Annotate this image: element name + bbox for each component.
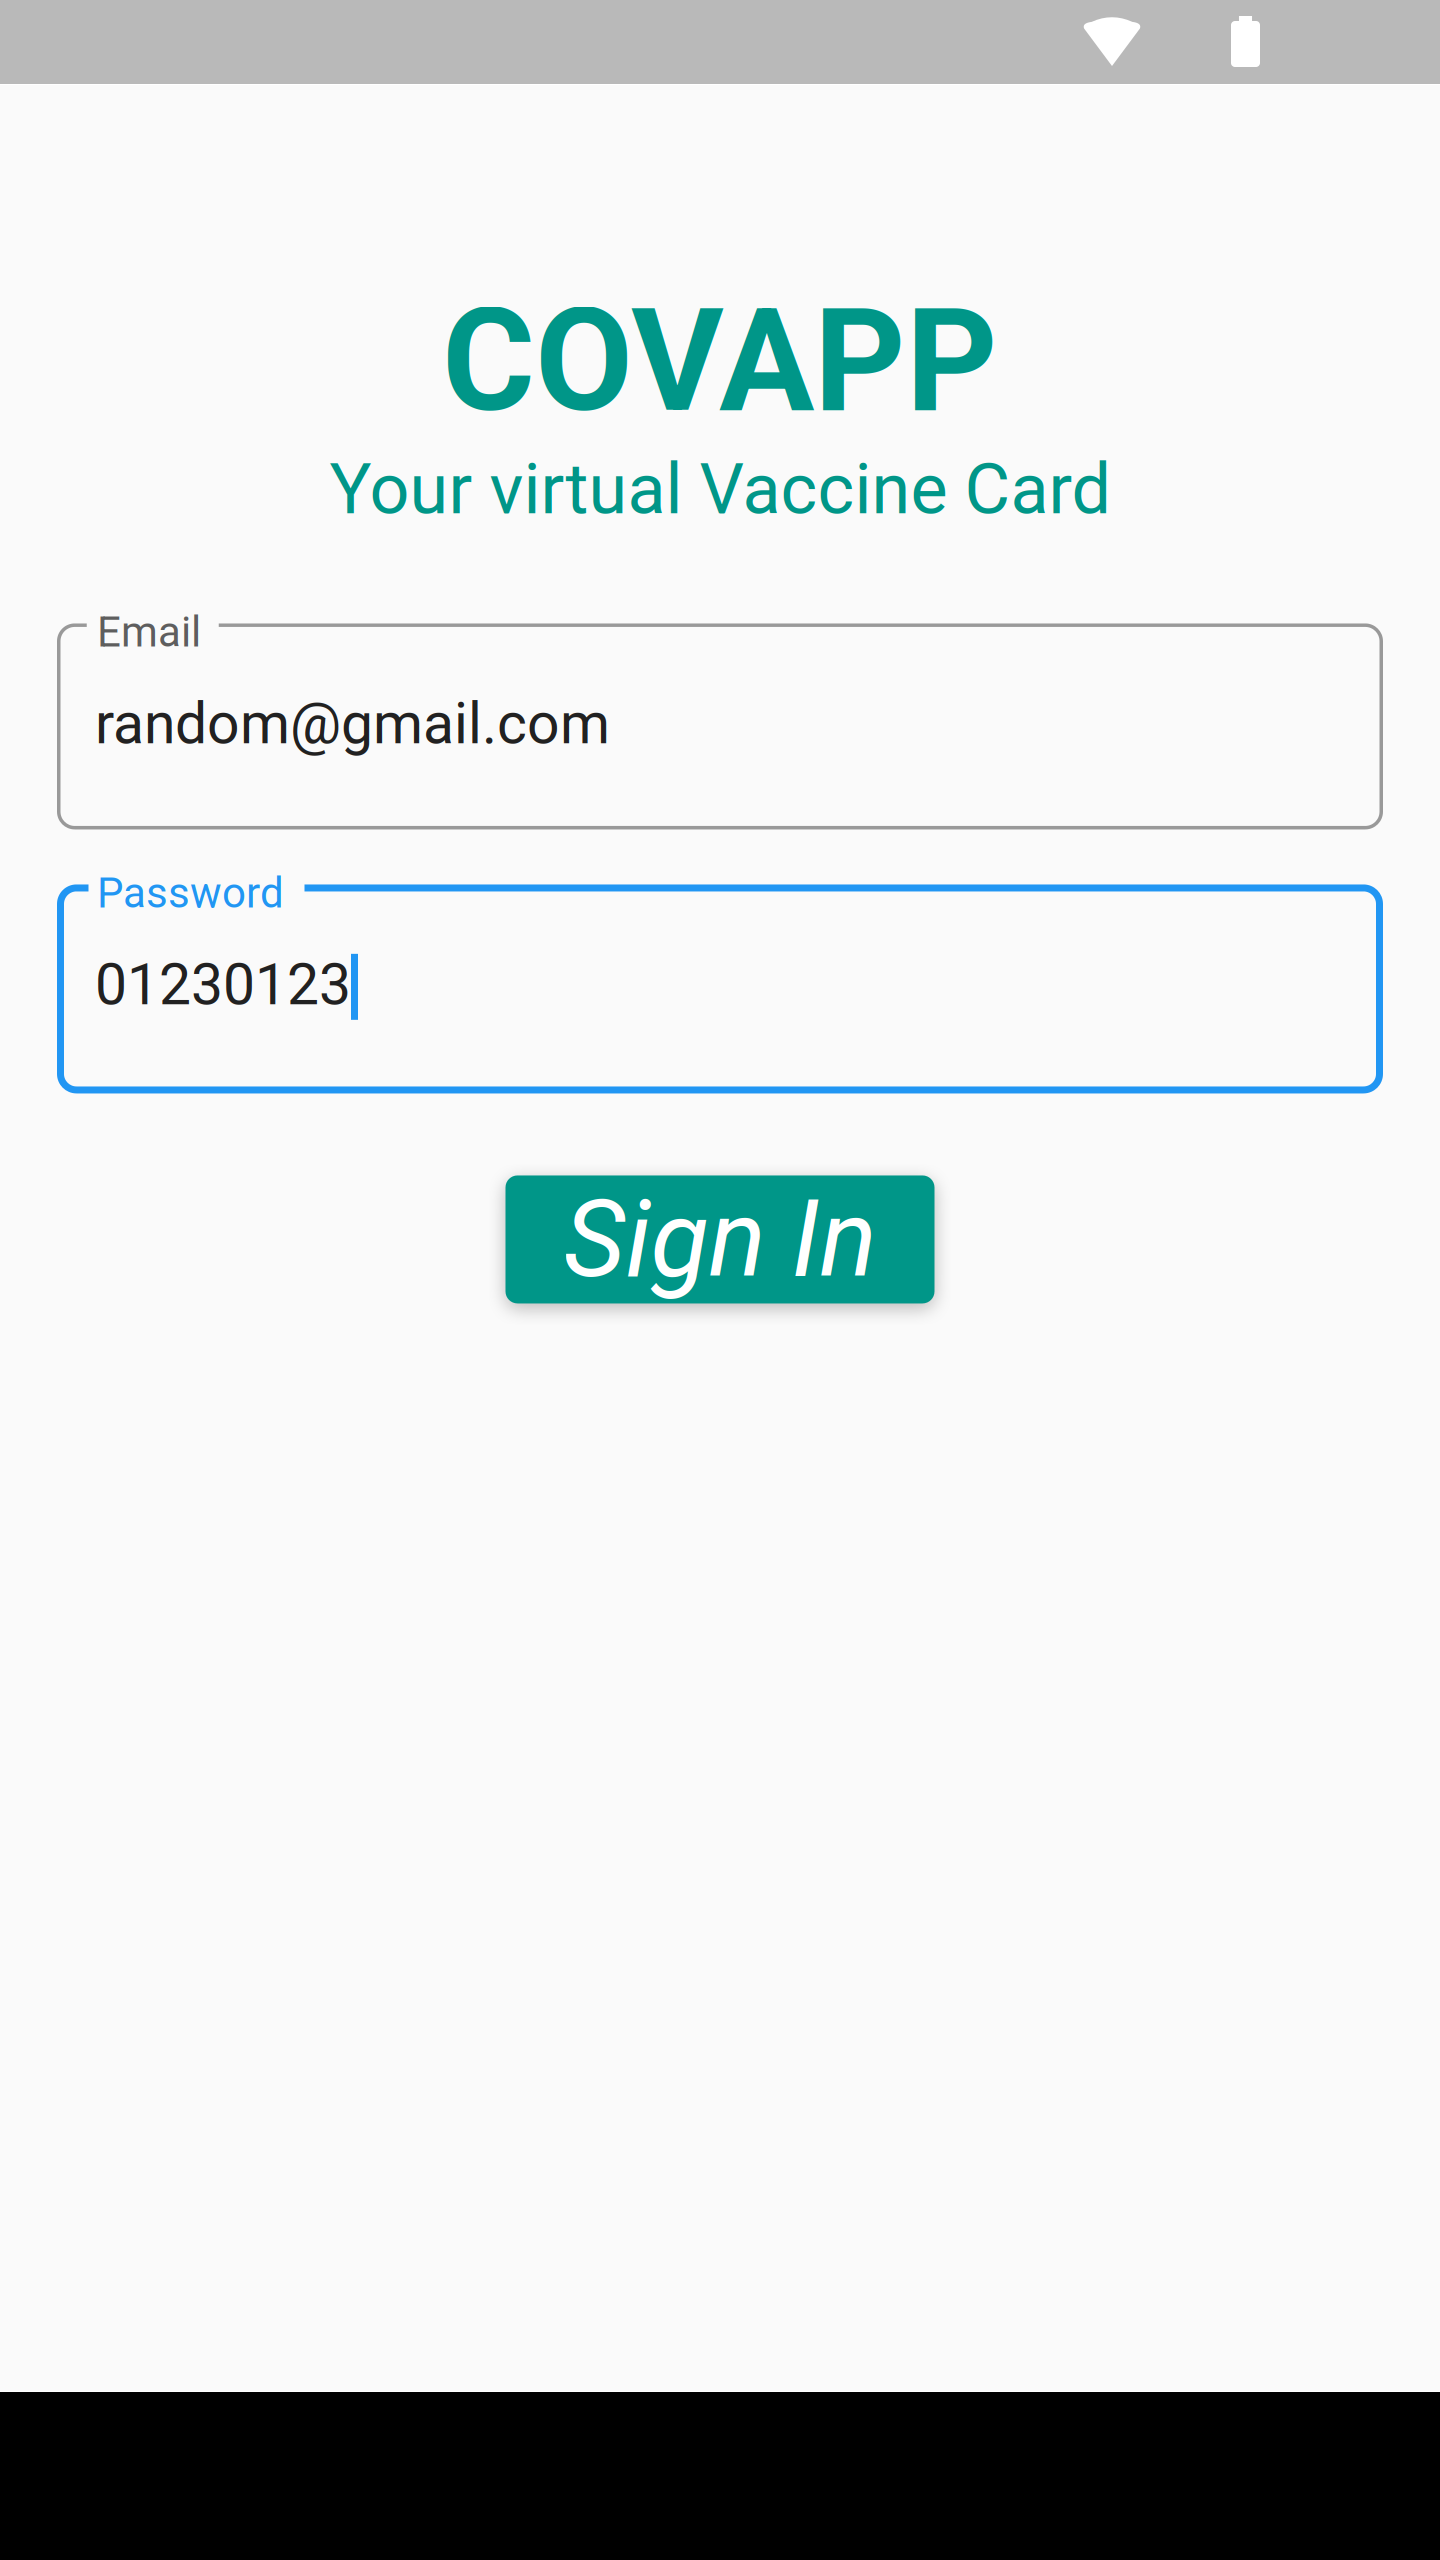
button[interactable]: Sign In	[505, 1175, 934, 1303]
staticText: Email	[97, 607, 201, 657]
button[interactable]: Email	[57, 623, 1383, 829]
staticText: Password	[97, 868, 284, 918]
staticText: 01230123	[95, 951, 351, 1018]
staticText: random@gmail.com	[95, 690, 610, 757]
button[interactable]: Password	[57, 884, 1383, 1093]
staticText: COVAPP	[442, 278, 998, 444]
staticText: Your virtual Vaccine Card	[329, 448, 1110, 530]
staticText: Sign In	[563, 1177, 876, 1302]
